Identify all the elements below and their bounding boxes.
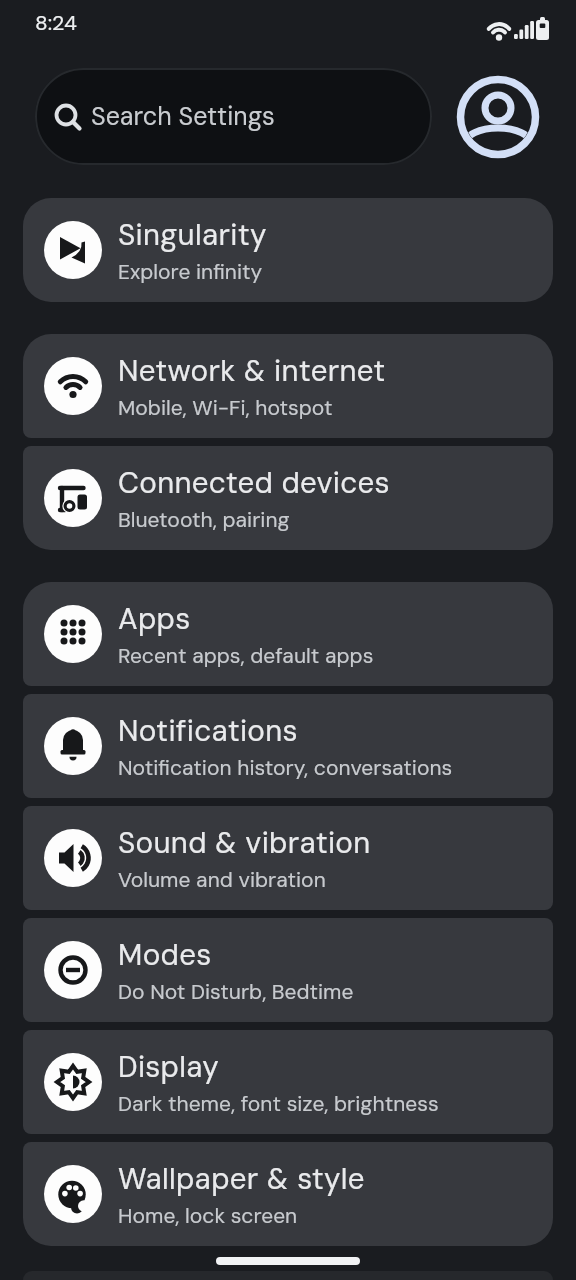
- staticText: Notifications: [118, 712, 298, 750]
- button[interactable]: Sound & vibration: [23, 806, 553, 910]
- button[interactable]: Network & internet: [23, 334, 553, 438]
- staticText: Recent apps, default apps: [118, 642, 374, 669]
- staticText: Wallpaper & style: [118, 1160, 365, 1198]
- button[interactable]: Notifications: [23, 694, 553, 798]
- staticText: Modes: [118, 936, 212, 974]
- button[interactable]: Singularity: [23, 198, 553, 302]
- button[interactable]: Modes: [23, 918, 553, 1022]
- staticText: Mobile, Wi-Fi, hotspot: [118, 394, 333, 421]
- staticText: Display: [118, 1048, 220, 1086]
- button[interactable]: [456, 75, 540, 159]
- button[interactable]: Apps: [23, 582, 553, 686]
- staticText: Connected devices: [118, 464, 390, 502]
- staticText: 8:24: [35, 9, 77, 36]
- staticText: Do Not Disturb, Bedtime: [118, 978, 354, 1005]
- button[interactable]: Display: [23, 1030, 553, 1134]
- button[interactable]: Connected devices: [23, 446, 553, 550]
- staticText: Home, lock screen: [118, 1202, 298, 1229]
- staticText: Explore infinity: [118, 258, 263, 285]
- button[interactable]: Wallpaper & style: [23, 1142, 553, 1246]
- staticText: Notification history, conversations: [118, 754, 453, 781]
- button[interactable]: Search Settings: [35, 68, 432, 165]
- staticText: Dark theme, font size, brightness: [118, 1090, 439, 1117]
- staticText: Singularity: [118, 216, 267, 254]
- staticText: Sound & vibration: [118, 824, 371, 862]
- staticText: Volume and vibration: [118, 866, 326, 893]
- staticText: Network & internet: [118, 352, 386, 390]
- staticText: Apps: [118, 600, 191, 638]
- staticText: Bluetooth, pairing: [118, 506, 290, 533]
- staticText: Search Settings: [91, 100, 275, 133]
